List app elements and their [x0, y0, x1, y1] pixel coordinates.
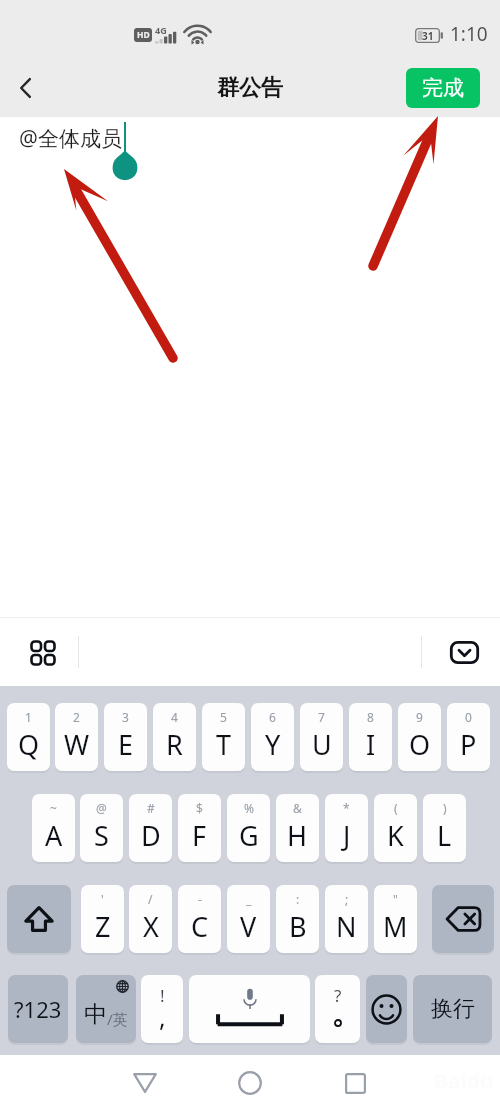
button[interactable]: _ [227, 885, 270, 953]
staticText: I [366, 726, 376, 763]
button[interactable]: 2 [55, 703, 98, 771]
staticText: & [293, 800, 302, 816]
staticText: E [118, 726, 134, 763]
button[interactable]: Switch language [76, 975, 136, 1043]
button[interactable]: 7 [300, 703, 343, 771]
staticText: ?123 [14, 994, 62, 1024]
staticText: # [147, 800, 155, 816]
staticText: N [336, 908, 357, 945]
staticText: ' [101, 891, 104, 907]
button[interactable]: 1 [7, 703, 50, 771]
staticText: D [141, 817, 161, 854]
button[interactable]: # [129, 794, 172, 862]
button[interactable]: ! [141, 975, 183, 1043]
staticText: @全体成员 [19, 124, 122, 153]
staticText: ! [160, 984, 165, 1007]
staticText: K [387, 817, 404, 854]
staticText: 6 [269, 709, 276, 725]
staticText: 5 [220, 709, 227, 725]
staticText: * [343, 800, 350, 816]
staticText: 4G [155, 24, 167, 36]
button[interactable]: @ [80, 794, 123, 862]
button[interactable]: 换行 [413, 975, 492, 1043]
button[interactable]: Keyboard layout [19, 629, 65, 675]
staticText: S [94, 817, 109, 854]
button[interactable]: 5 [202, 703, 245, 771]
staticText: 7 [318, 709, 325, 725]
staticText: 8 [367, 709, 374, 725]
button[interactable]: : [276, 885, 319, 953]
button[interactable]: Emoji [366, 975, 407, 1043]
button[interactable]: & [276, 794, 319, 862]
button[interactable]: / [129, 885, 172, 953]
button[interactable]: Shift [7, 885, 71, 953]
staticText: O [409, 726, 431, 763]
staticText: ? [334, 984, 342, 1007]
staticText: 1:10 [450, 21, 488, 47]
button[interactable]: ; [325, 885, 368, 953]
button[interactable]: Home [223, 1056, 277, 1110]
button[interactable]: * [325, 794, 368, 862]
button[interactable]: - [178, 885, 221, 953]
button[interactable]: 3 [104, 703, 147, 771]
button[interactable]: 9 [398, 703, 441, 771]
staticText: , [159, 1000, 166, 1034]
staticText: ; [345, 891, 349, 907]
staticText: C [191, 908, 209, 945]
button[interactable]: Back [118, 1056, 172, 1110]
button[interactable]: 0 [447, 703, 490, 771]
staticText: V [240, 908, 257, 945]
staticText: 2 [73, 709, 80, 725]
staticText: G [239, 817, 259, 854]
staticText: W [64, 726, 90, 763]
staticText: _ [246, 891, 252, 907]
staticText: A [45, 817, 63, 854]
button[interactable]: ? [315, 975, 360, 1043]
staticText: - [198, 891, 202, 907]
staticText: $ [196, 800, 203, 816]
staticText: /英 [107, 1009, 128, 1029]
button[interactable]: Space [189, 975, 310, 1043]
staticText: " [393, 891, 398, 907]
button[interactable]: ~ [32, 794, 75, 862]
staticText: M [383, 908, 408, 945]
staticText: 3 [122, 709, 129, 725]
button[interactable]: ' [81, 885, 124, 953]
button[interactable]: Back [3, 65, 49, 111]
staticText: ) [443, 800, 447, 816]
button[interactable]: ( [374, 794, 417, 862]
staticText: 31 [422, 29, 434, 43]
staticText: T [216, 726, 232, 763]
staticText: B [289, 908, 307, 945]
button[interactable]: Recents [328, 1056, 382, 1110]
button[interactable]: " [374, 885, 417, 953]
staticText: 1 [25, 709, 32, 725]
button[interactable]: 6 [251, 703, 294, 771]
staticText: ~ [50, 800, 57, 816]
button[interactable]: % [227, 794, 270, 862]
staticText: J [343, 817, 351, 854]
button[interactable]: ) [423, 794, 466, 862]
staticText: % [244, 800, 254, 816]
staticText: U [312, 726, 332, 763]
staticText: 4 [171, 709, 178, 725]
staticText: H [287, 817, 308, 854]
staticText: Y [265, 726, 281, 763]
staticText: 9 [416, 709, 423, 725]
staticText: X [143, 908, 159, 945]
button[interactable]: 完成 [406, 68, 480, 108]
staticText: 完成 [422, 75, 464, 101]
button[interactable]: $ [178, 794, 221, 862]
staticText: 中 [84, 1000, 107, 1029]
button[interactable]: ?123 [8, 975, 68, 1043]
staticText: HD [137, 29, 150, 41]
staticText: F [192, 817, 207, 854]
staticText: R [166, 726, 183, 763]
staticText: P [460, 726, 477, 763]
button[interactable]: Hide keyboard [441, 629, 487, 675]
button[interactable]: 8 [349, 703, 392, 771]
button[interactable]: Backspace [432, 885, 494, 953]
staticText: 群公告 [217, 74, 283, 102]
button[interactable]: 4 [153, 703, 196, 771]
